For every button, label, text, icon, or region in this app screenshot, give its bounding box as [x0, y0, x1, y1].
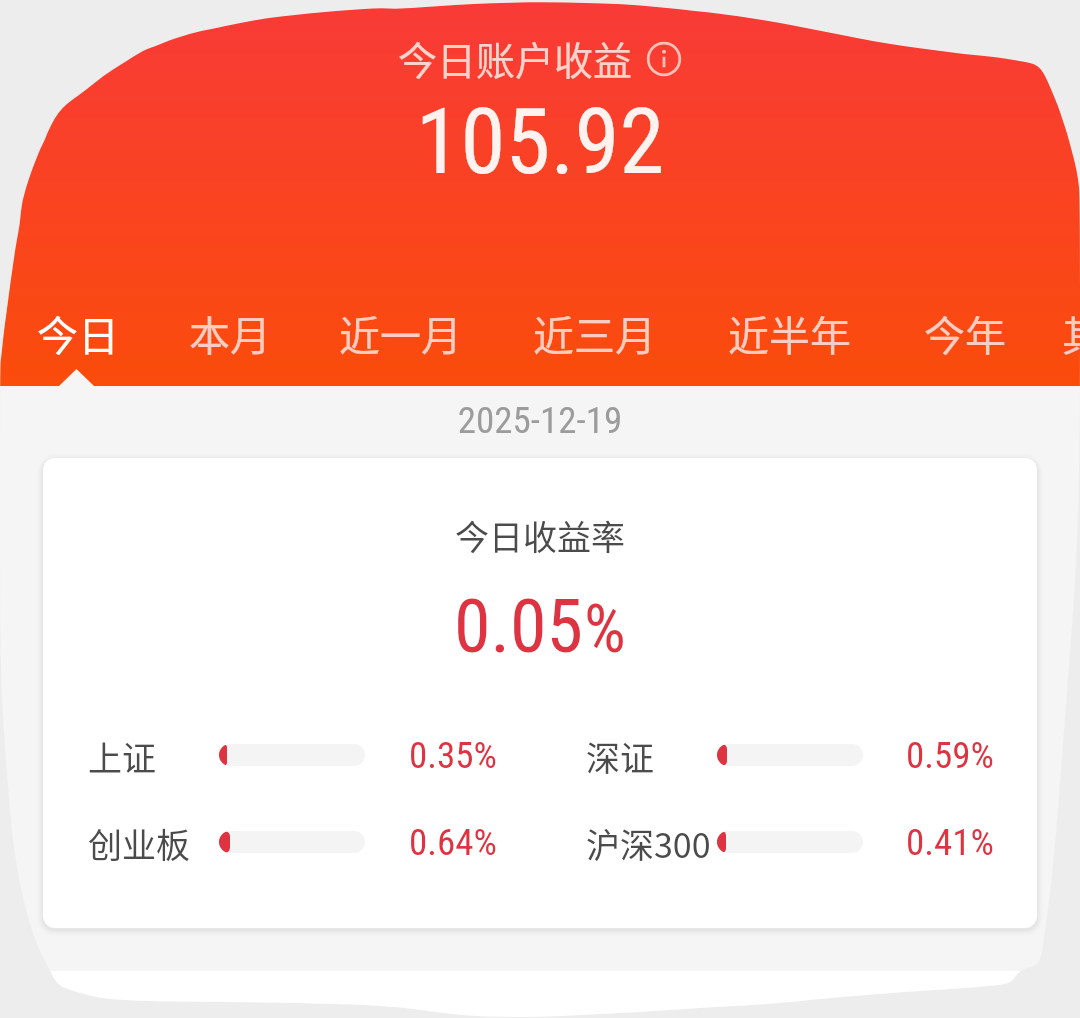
staticText: 今日收益率: [43, 511, 1037, 560]
staticText: 今年: [924, 303, 1006, 362]
staticText: 今日账户收益: [398, 30, 633, 86]
button[interactable]: 近半年: [728, 300, 851, 386]
staticText: 0.05: [454, 583, 584, 670]
staticText: 今日: [37, 303, 119, 362]
other: Info: [645, 40, 683, 78]
staticText: 近一月: [339, 303, 462, 362]
staticText: 本月: [189, 303, 271, 362]
staticText: 0.59%: [906, 734, 994, 777]
staticText: 沪深300: [586, 819, 711, 865]
staticText: 0.35%: [409, 734, 497, 777]
staticText: 近三月: [533, 303, 656, 362]
staticText: 近半年: [728, 303, 851, 362]
staticText: 其: [1062, 303, 1080, 362]
staticText: 0.64%: [409, 821, 497, 864]
button[interactable]: 今日账户收益: [0, 30, 1080, 86]
staticText: 创业板: [88, 819, 190, 865]
button[interactable]: 上证: [88, 732, 509, 778]
staticText: 上证: [88, 732, 156, 778]
staticText: 0.41%: [906, 821, 994, 864]
button[interactable]: 今年: [924, 300, 1006, 386]
button[interactable]: 创业板: [88, 819, 509, 865]
button[interactable]: 其: [1062, 300, 1080, 386]
button[interactable]: 今日: [37, 300, 119, 386]
button[interactable]: 本月: [189, 300, 271, 386]
staticText: %: [584, 591, 626, 668]
button[interactable]: 深证: [586, 732, 1006, 778]
staticText: 105.92: [0, 89, 1080, 196]
button[interactable]: 近一月: [339, 300, 462, 386]
button[interactable]: 近三月: [533, 300, 656, 386]
button[interactable]: 沪深300: [586, 819, 1006, 865]
staticText: 2025-12-19: [0, 399, 1080, 442]
staticText: 深证: [586, 732, 654, 778]
